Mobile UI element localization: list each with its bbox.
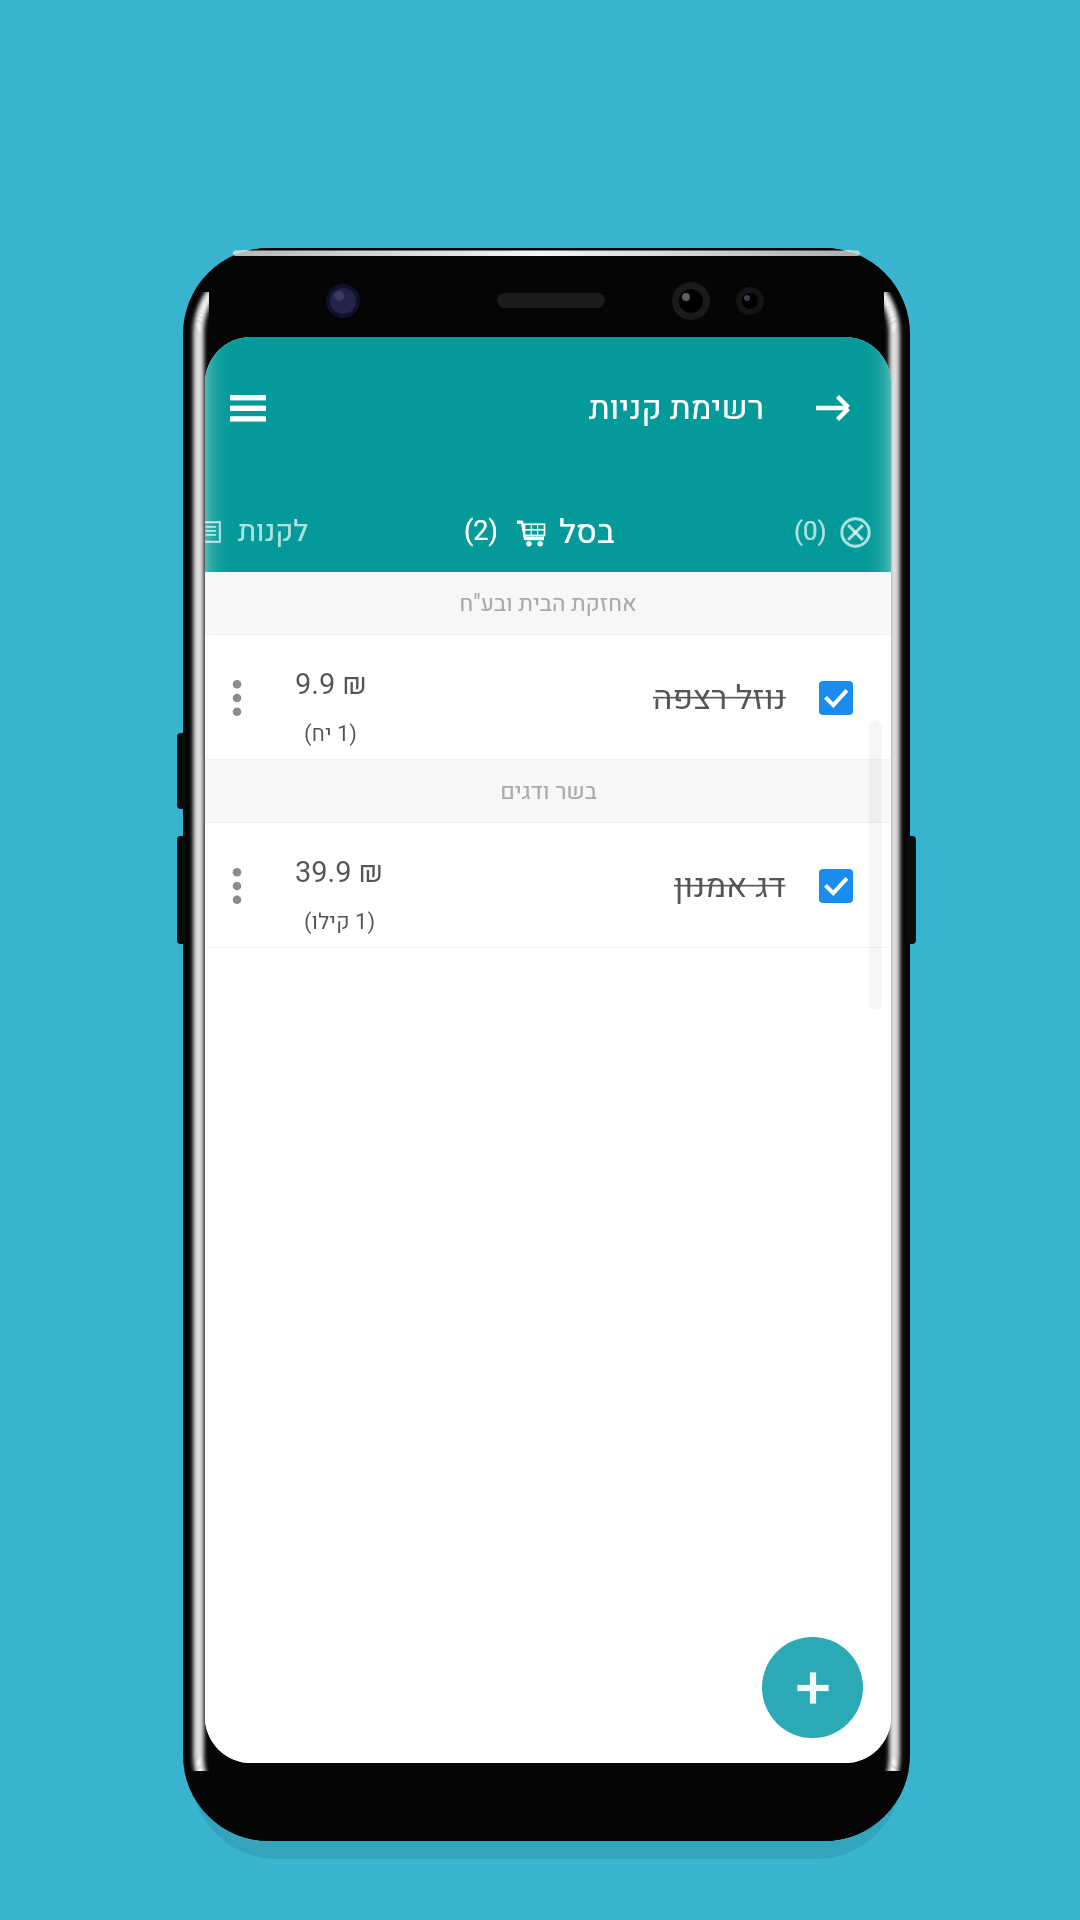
button[interactable]: More options: [205, 635, 891, 760]
button[interactable]: Forward: [796, 372, 868, 444]
button[interactable]: (0): [794, 492, 891, 572]
button[interactable]: Toggle item: [800, 823, 872, 948]
staticText: לקנות: [238, 511, 309, 554]
staticText: (0): [794, 513, 827, 551]
staticText: ‏(1 קילו): [304, 906, 376, 938]
staticText: אחזקת הבית ובע"ח: [459, 587, 637, 621]
button[interactable]: Menu: [212, 372, 284, 444]
button[interactable]: (2): [464, 492, 615, 572]
staticText: בסל: [559, 508, 615, 556]
button[interactable]: More options: [205, 635, 273, 760]
button[interactable]: Toggle item: [800, 635, 872, 760]
staticText: 39.9 ₪: [295, 852, 384, 895]
button[interactable]: More options: [205, 823, 891, 948]
button[interactable]: More options: [205, 823, 273, 948]
staticText: רשימת קניות: [589, 384, 764, 432]
button[interactable]: Add item: [762, 1637, 863, 1738]
staticText: דג אמנון: [674, 862, 786, 910]
staticText: (2): [464, 512, 498, 552]
staticText: ‏(1 יח): [304, 718, 358, 750]
staticText: בשר ודגים: [500, 775, 597, 809]
button[interactable]: לקנות: [205, 492, 309, 572]
staticText: נוזל רצפה: [653, 674, 786, 722]
staticText: 9.9 ₪: [295, 664, 367, 707]
